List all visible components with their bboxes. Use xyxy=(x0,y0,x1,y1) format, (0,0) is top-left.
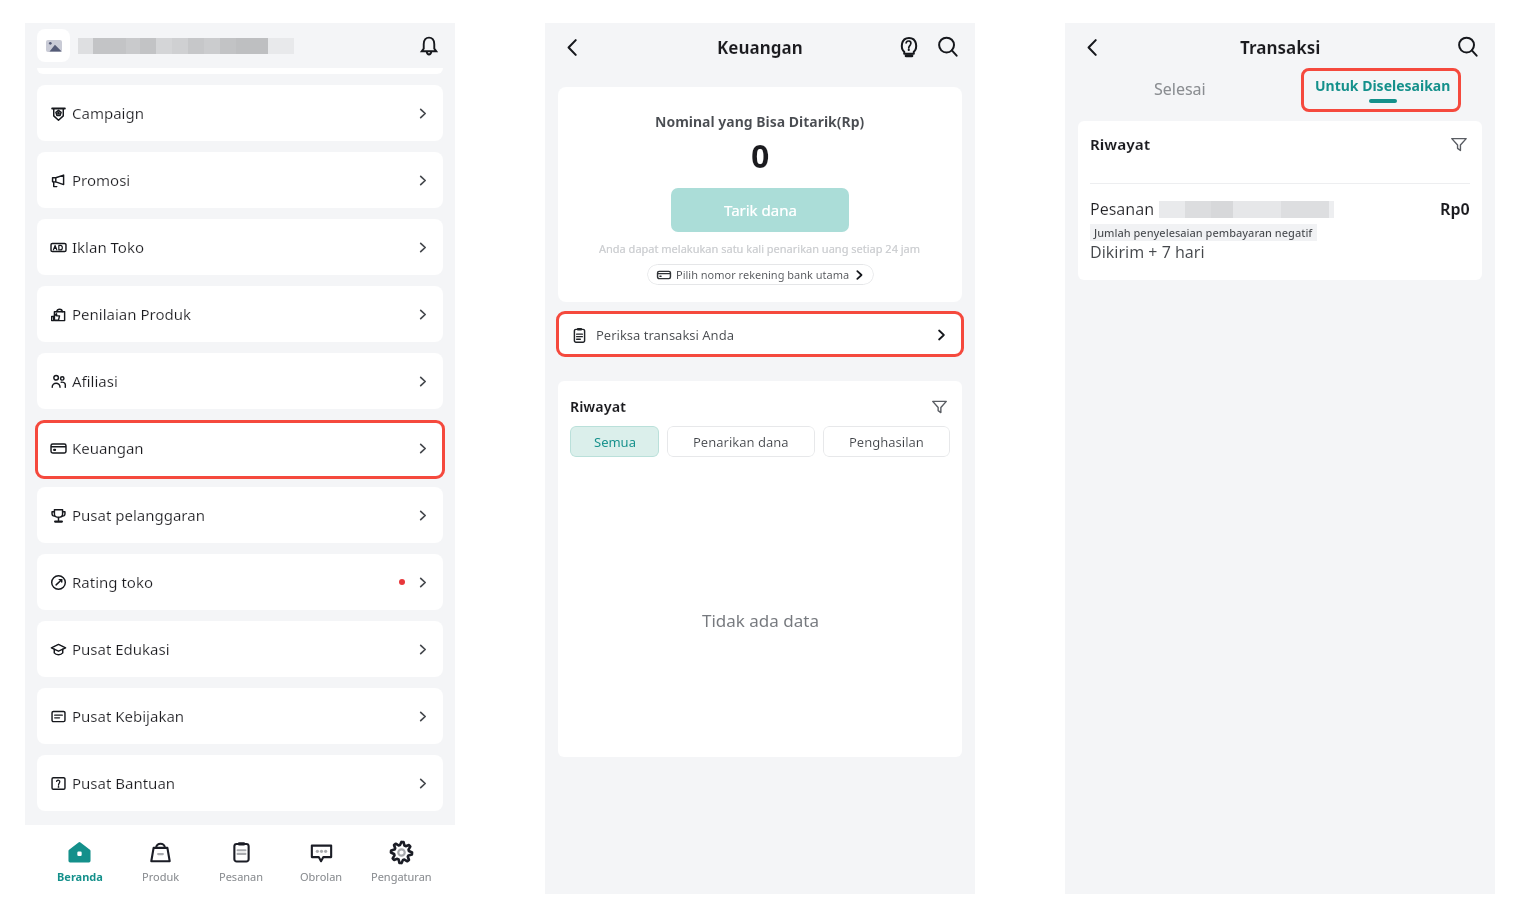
staticText: Periksa transaksi Anda xyxy=(596,326,734,344)
staticText: Tarik dana xyxy=(724,200,797,220)
staticText: Iklan Toko xyxy=(72,237,145,257)
staticText: Campaign xyxy=(72,103,144,123)
button[interactable]: Pesanan xyxy=(201,831,281,893)
staticText: Pusat Bantuan xyxy=(72,773,176,793)
staticText: Jumlah penyelesaian pembayaran negatif xyxy=(1094,225,1313,240)
staticText: Rating toko xyxy=(72,572,154,592)
staticText: Tidak ada data xyxy=(702,609,819,632)
staticText: Penilaian Produk xyxy=(72,304,191,324)
staticText: Pengaturan xyxy=(371,869,432,884)
staticText: Riwayat xyxy=(570,397,627,416)
button[interactable]: Afiliasi xyxy=(37,353,443,409)
button[interactable]: Filter xyxy=(928,395,950,417)
staticText: Keuangan xyxy=(72,438,144,458)
button[interactable]: Pesanan xyxy=(1090,184,1470,280)
staticText: Rp0 xyxy=(1440,198,1470,220)
staticText: Pusat Kebijakan xyxy=(72,706,185,726)
staticText: Produk xyxy=(142,869,180,884)
staticText: Pusat pelanggaran xyxy=(72,505,205,525)
button[interactable]: Penghasilan xyxy=(823,426,950,457)
staticText: 0 xyxy=(751,134,770,178)
button[interactable]: Iklan Toko xyxy=(37,219,443,275)
staticText: Afiliasi xyxy=(72,371,118,391)
button[interactable]: Notifications xyxy=(413,30,445,62)
button[interactable]: Campaign xyxy=(37,85,443,141)
button[interactable]: Back xyxy=(1077,32,1107,62)
button[interactable]: Pusat Kebijakan xyxy=(37,688,443,744)
button[interactable]: Penarikan dana xyxy=(667,426,815,457)
button[interactable]: Help xyxy=(894,32,924,62)
staticText: Dikirim + 7 hari xyxy=(1090,241,1205,263)
staticText: Transaksi xyxy=(1240,36,1321,59)
staticText: Pesanan xyxy=(219,869,264,884)
staticText: Selesai xyxy=(1154,78,1206,100)
button[interactable]: Pusat pelanggaran xyxy=(37,487,443,543)
button[interactable]: Search xyxy=(1453,32,1483,62)
button[interactable]: Periksa transaksi Anda xyxy=(558,314,962,356)
button[interactable]: Filter xyxy=(1448,133,1470,155)
button[interactable]: Obrolan xyxy=(281,831,361,893)
button[interactable]: Untuk Diselesaikan xyxy=(1280,71,1495,121)
button[interactable]: Search xyxy=(933,32,963,62)
staticText: Anda dapat melakukan satu kali penarikan… xyxy=(599,241,921,256)
staticText: Pilih nomor rekening bank utama xyxy=(676,267,850,282)
button[interactable]: Beranda xyxy=(39,831,120,893)
staticText: Riwayat xyxy=(1090,134,1151,154)
button[interactable]: Keuangan xyxy=(37,420,443,476)
button[interactable]: Pilih nomor rekening bank utama xyxy=(647,264,874,285)
button[interactable]: Back xyxy=(557,32,587,62)
button[interactable]: Rating toko xyxy=(37,554,443,610)
staticText: Semua xyxy=(594,433,636,451)
button[interactable]: Produk xyxy=(120,831,201,893)
staticText: Pusat Edukasi xyxy=(72,639,170,659)
button[interactable]: Selesai xyxy=(1065,71,1280,121)
staticText: Keuangan xyxy=(717,36,803,59)
staticText: Penarikan dana xyxy=(693,433,789,451)
staticText: Beranda xyxy=(57,869,103,884)
button[interactable]: Semua xyxy=(570,426,659,457)
button[interactable]: Tarik dana xyxy=(671,188,849,232)
button[interactable]: Penilaian Produk xyxy=(37,286,443,342)
staticText: Penghasilan xyxy=(849,433,924,451)
staticText: Nominal yang Bisa Ditarik(Rp) xyxy=(655,112,865,131)
staticText: Promosi xyxy=(72,170,131,190)
button[interactable]: Pusat Bantuan xyxy=(37,755,443,811)
staticText: Obrolan xyxy=(300,869,343,884)
button[interactable]: Pengaturan xyxy=(361,831,441,893)
button[interactable]: Pusat Edukasi xyxy=(37,621,443,677)
button[interactable]: Promosi xyxy=(37,152,443,208)
staticText: Untuk Diselesaikan xyxy=(1315,76,1451,95)
staticText: Pesanan xyxy=(1090,198,1155,220)
